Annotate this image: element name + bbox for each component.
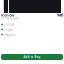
staticText: Fragrance <box>4 33 16 36</box>
staticText: Vegan <box>4 28 13 31</box>
staticText: $48 <box>57 12 63 18</box>
staticText: Add to Bag <box>23 55 40 59</box>
staticText: Clinical <box>4 23 14 26</box>
button[interactable]: Add to Bag <box>1 54 63 60</box>
staticText: 30 ml serum <box>1 17 18 20</box>
staticText: Renew <box>1 12 14 18</box>
